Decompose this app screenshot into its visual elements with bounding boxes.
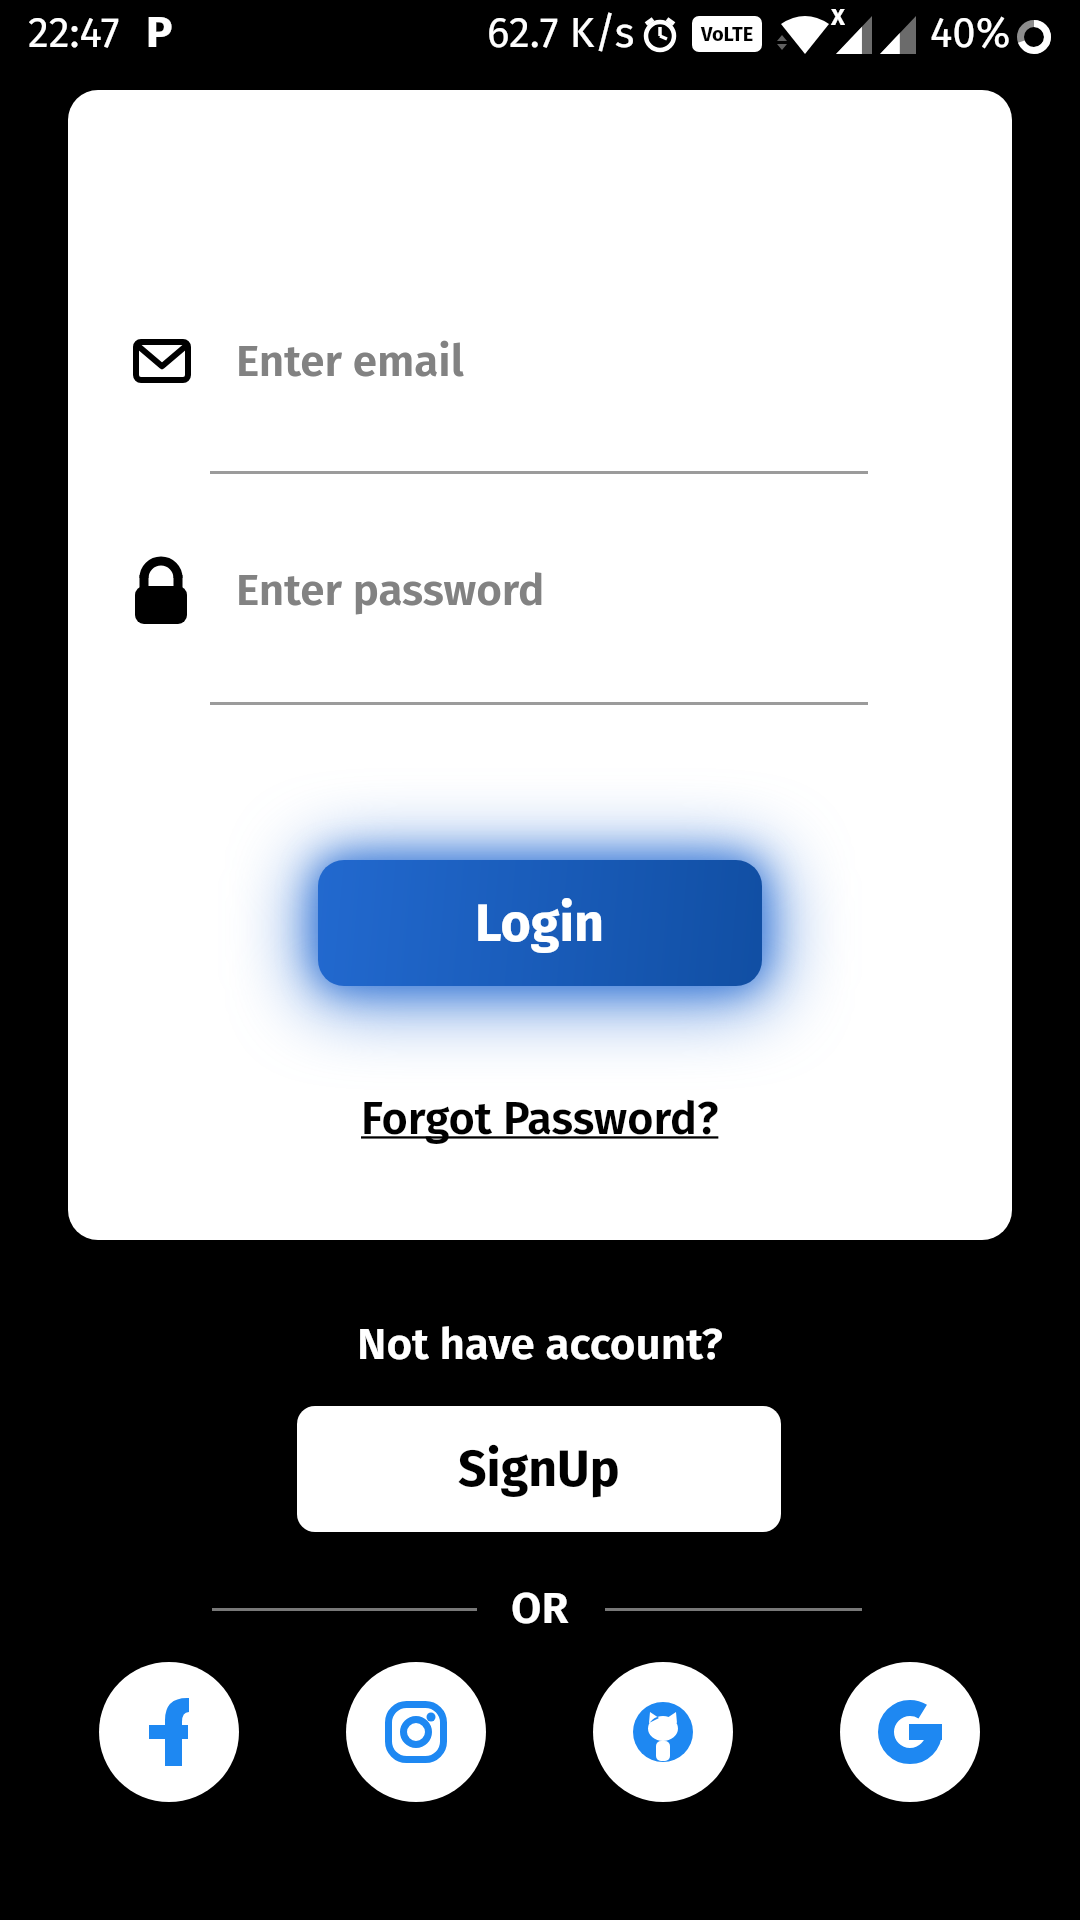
staticText: P bbox=[146, 6, 173, 59]
staticText: 40% bbox=[930, 8, 1011, 58]
staticText: Enter password bbox=[236, 564, 545, 617]
button[interactable]: Forgot Password? bbox=[361, 1092, 719, 1146]
button[interactable]: Login bbox=[318, 860, 762, 986]
button[interactable]: SignUp bbox=[297, 1406, 781, 1532]
staticText: 22:47 bbox=[28, 8, 120, 58]
button[interactable] bbox=[593, 1662, 733, 1802]
staticText: VoLTE bbox=[701, 22, 754, 46]
staticText: Login bbox=[475, 892, 605, 954]
staticText: OR bbox=[511, 1582, 569, 1635]
button[interactable]: Enter email bbox=[236, 332, 656, 390]
staticText: Forgot Password? bbox=[361, 1092, 719, 1146]
staticText: Enter email bbox=[236, 335, 464, 388]
button[interactable]: Enter password bbox=[236, 561, 656, 619]
button[interactable] bbox=[99, 1662, 239, 1802]
staticText: SignUp bbox=[458, 1439, 620, 1499]
staticText: X bbox=[831, 3, 845, 32]
button[interactable] bbox=[840, 1662, 980, 1802]
staticText: 62.7 K/s bbox=[487, 8, 635, 58]
button[interactable] bbox=[346, 1662, 486, 1802]
staticText: Not have account? bbox=[357, 1318, 723, 1371]
